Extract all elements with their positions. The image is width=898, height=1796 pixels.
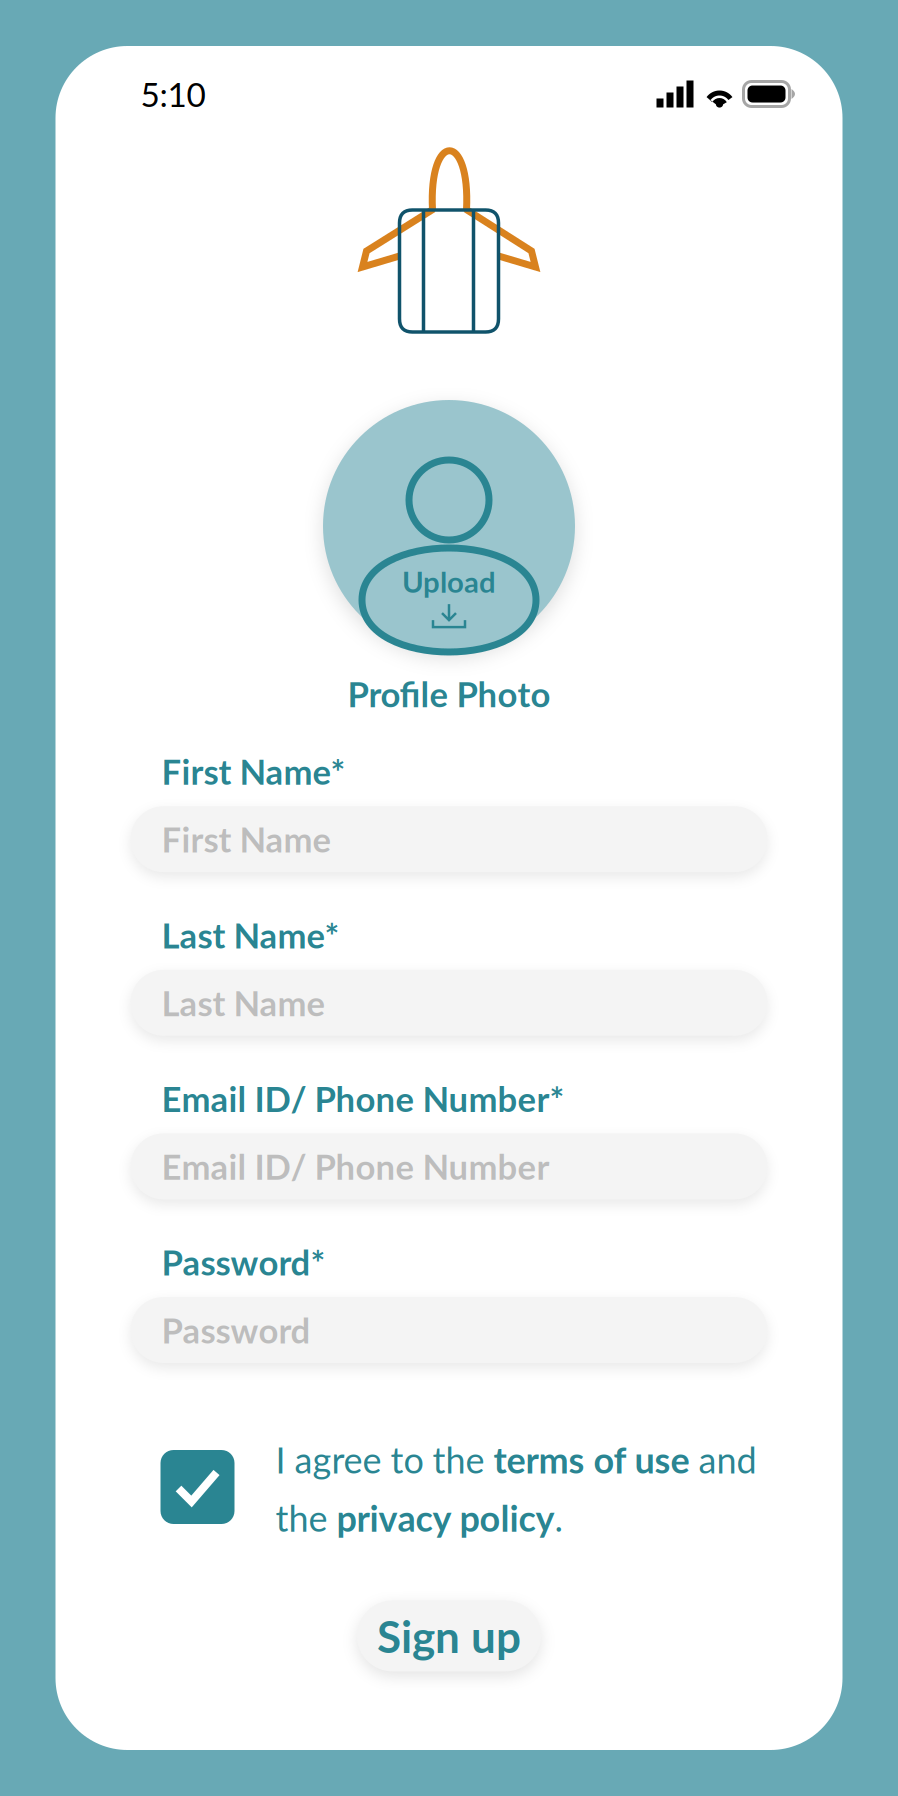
staticText: Profile Photo (347, 673, 550, 715)
staticText: Password* (161, 1241, 325, 1283)
staticText: First Name (161, 818, 331, 860)
staticText: Sign up (377, 1609, 521, 1662)
button[interactable]: Sign up (357, 1600, 541, 1671)
staticText: I agree to the terms of use and the priv… (275, 1438, 756, 1539)
button[interactable]: Last Name (130, 970, 767, 1036)
staticText: Upload (402, 564, 496, 599)
button[interactable]: First Name (130, 806, 767, 872)
button[interactable]: Password (130, 1297, 767, 1363)
button[interactable]: Upload profile photo (323, 400, 575, 715)
staticText: Last Name* (161, 914, 339, 956)
button[interactable]: Email ID/ Phone Number (130, 1133, 767, 1199)
staticText: First Name* (161, 751, 345, 792)
staticText: 5:10 (140, 74, 205, 114)
staticText: Password (161, 1309, 310, 1351)
staticText: Email ID/ Phone Number (161, 1146, 549, 1187)
staticText: Email ID/ Phone Number* (161, 1078, 564, 1119)
button[interactable]: Agree to terms and privacy policy (160, 1450, 234, 1524)
staticText: Last Name (161, 982, 325, 1024)
